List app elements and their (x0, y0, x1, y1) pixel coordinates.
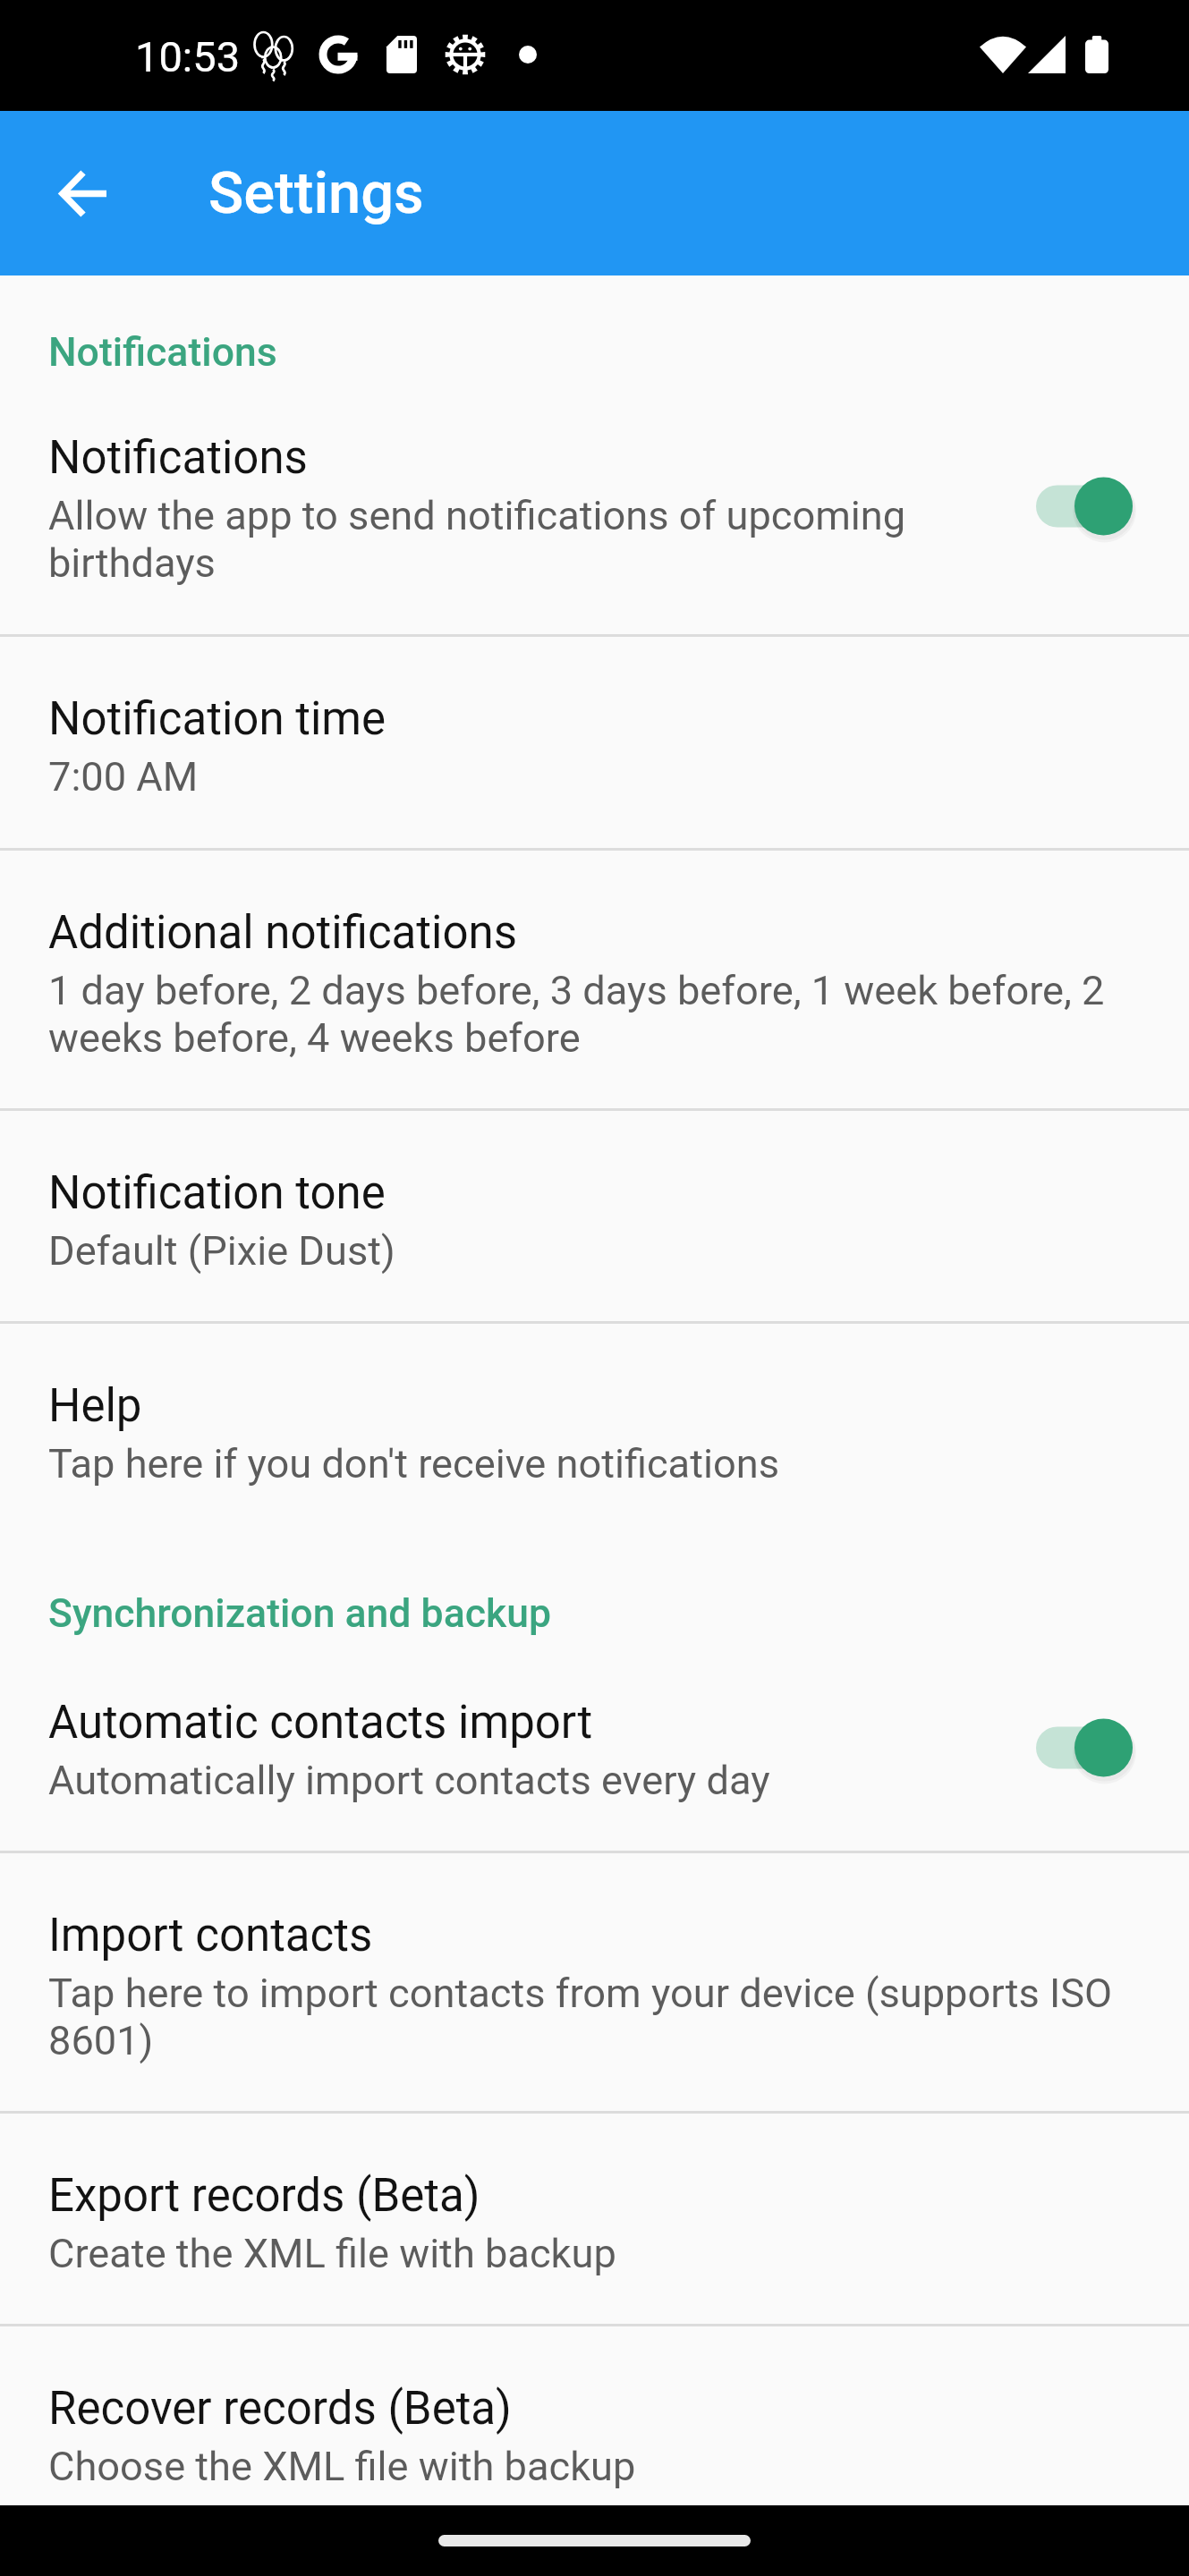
staticText: 7:00 AM (48, 753, 199, 801)
staticText: Notifications (48, 431, 308, 485)
staticText: Default (Pixie Dust) (48, 1227, 395, 1275)
button[interactable]: Automatic contacts import (0, 1640, 1189, 1851)
staticText: Synchronization and backup (48, 1590, 552, 1637)
staticText: Tap here if you don't receive notificati… (48, 1440, 780, 1487)
button[interactable]: Navigate up (41, 150, 127, 236)
button[interactable]: Recover records (Beta) (0, 2326, 1189, 2537)
staticText: Tap here to import contacts from your de… (48, 1970, 1133, 2064)
button[interactable]: Notifications, on (1027, 466, 1133, 552)
staticText: Choose the XML file with backup (48, 2443, 636, 2490)
staticText: Allow the app to send notifications of u… (48, 492, 1006, 587)
staticText: Export records (Beta) (48, 2169, 480, 2223)
button[interactable]: Additional notifications (0, 851, 1189, 1108)
staticText: Help (48, 1379, 142, 1433)
staticText: Automatic contacts import (48, 1696, 593, 1750)
staticText: Import contacts (48, 1909, 373, 1962)
staticText: 1 day before, 2 days before, 3 days befo… (48, 967, 1133, 1062)
button[interactable]: Notification time (0, 637, 1189, 848)
button[interactable]: Notifications (0, 376, 1189, 634)
staticText: Automatically import contacts every day (48, 1757, 770, 1804)
staticText: Notification time (48, 692, 386, 746)
staticText: Recover records (Beta) (48, 2382, 512, 2436)
staticText: Notifications (48, 329, 277, 376)
staticText: Create the XML file with backup (48, 2230, 616, 2277)
button[interactable]: Export records (Beta) (0, 2114, 1189, 2324)
button[interactable]: Automatic contacts import, on (1027, 1707, 1133, 1793)
staticText: 10:53 (135, 32, 241, 81)
button[interactable]: Import contacts (0, 1853, 1189, 2111)
button[interactable]: Notification tone (0, 1111, 1189, 1321)
staticText: Settings (208, 159, 424, 227)
staticText: Additional notifications (48, 906, 518, 960)
staticText: Notification tone (48, 1166, 386, 1220)
button[interactable]: Help (0, 1324, 1189, 1530)
